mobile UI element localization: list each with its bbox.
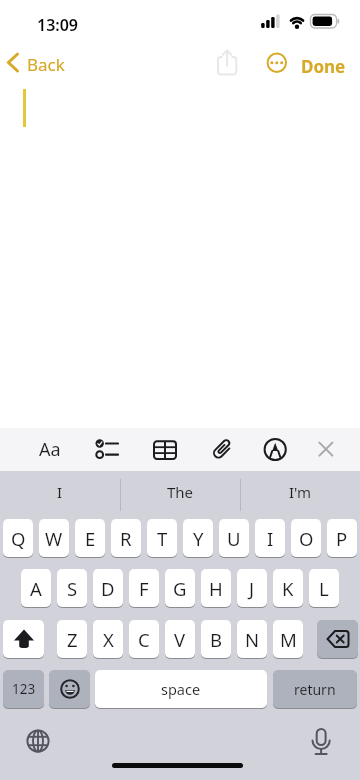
button[interactable]: The: [120, 471, 240, 512]
button[interactable]: P: [327, 519, 357, 557]
button[interactable]: R: [111, 519, 141, 557]
staticText: O: [299, 526, 314, 551]
staticText: K: [282, 576, 294, 601]
button[interactable]: [90, 437, 122, 462]
staticText: The: [167, 482, 194, 502]
button[interactable]: [25, 728, 51, 754]
button[interactable]: L: [309, 569, 339, 607]
staticText: Y: [193, 526, 204, 551]
staticText: 13:09: [37, 14, 79, 36]
button[interactable]: M: [273, 620, 303, 658]
button[interactable]: [316, 439, 336, 459]
button[interactable]: S: [57, 569, 87, 607]
staticText: S: [67, 576, 78, 601]
button[interactable]: T: [147, 519, 177, 557]
staticText: V: [174, 627, 186, 652]
button[interactable]: O: [291, 519, 321, 557]
button[interactable]: I: [255, 519, 285, 557]
button[interactable]: H: [201, 569, 231, 607]
button[interactable]: [49, 670, 90, 708]
button[interactable]: Z: [57, 620, 87, 658]
button[interactable]: I: [0, 471, 120, 512]
button[interactable]: [207, 435, 237, 465]
button[interactable]: V: [165, 620, 195, 658]
staticText: P: [336, 526, 348, 551]
staticText: 123: [12, 680, 36, 698]
staticText: F: [139, 576, 149, 601]
button[interactable]: I'm: [240, 471, 360, 512]
staticText: space: [161, 679, 201, 699]
button[interactable]: J: [237, 569, 267, 607]
staticText: Q: [11, 526, 26, 551]
staticText: Aa: [39, 437, 61, 462]
button[interactable]: Back: [4, 48, 74, 78]
staticText: T: [157, 526, 168, 551]
staticText: E: [85, 526, 96, 551]
staticText: J: [249, 576, 255, 601]
button[interactable]: [263, 437, 288, 462]
staticText: G: [173, 576, 187, 601]
staticText: H: [209, 576, 223, 601]
button[interactable]: W: [39, 519, 69, 557]
button[interactable]: A: [21, 569, 51, 607]
button[interactable]: C: [129, 620, 159, 658]
button[interactable]: G: [165, 569, 195, 607]
staticText: return: [294, 680, 336, 699]
button[interactable]: [3, 620, 44, 658]
button[interactable]: [265, 51, 289, 75]
staticText: W: [45, 526, 63, 551]
button[interactable]: [308, 726, 334, 758]
button[interactable]: Q: [3, 519, 33, 557]
button[interactable]: [317, 620, 358, 658]
staticText: C: [138, 627, 150, 652]
button[interactable]: B: [201, 620, 231, 658]
staticText: I: [267, 526, 274, 551]
staticText: I: [57, 482, 63, 502]
staticText: A: [30, 576, 42, 601]
button[interactable]: 123: [3, 670, 44, 708]
button[interactable]: Done: [301, 55, 346, 78]
staticText: N: [245, 627, 260, 652]
staticText: D: [101, 576, 115, 601]
button[interactable]: Aa: [34, 436, 66, 462]
staticText: R: [120, 526, 132, 551]
staticText: X: [103, 627, 114, 652]
button[interactable]: X: [93, 620, 123, 658]
staticText: M: [280, 627, 297, 652]
button[interactable]: return: [273, 670, 357, 708]
button[interactable]: E: [75, 519, 105, 557]
button[interactable]: space: [95, 670, 267, 708]
button[interactable]: U: [219, 519, 249, 557]
button[interactable]: F: [129, 569, 159, 607]
button[interactable]: [151, 438, 179, 462]
button[interactable]: N: [237, 620, 267, 658]
button[interactable]: [213, 46, 241, 80]
button[interactable]: Y: [183, 519, 213, 557]
button[interactable]: K: [273, 569, 303, 607]
staticText: Back: [27, 53, 65, 76]
staticText: U: [227, 526, 241, 551]
staticText: Z: [67, 627, 78, 652]
button[interactable]: D: [93, 569, 123, 607]
staticText: L: [319, 576, 329, 601]
staticText: I'm: [289, 482, 312, 502]
staticText: B: [210, 627, 223, 652]
